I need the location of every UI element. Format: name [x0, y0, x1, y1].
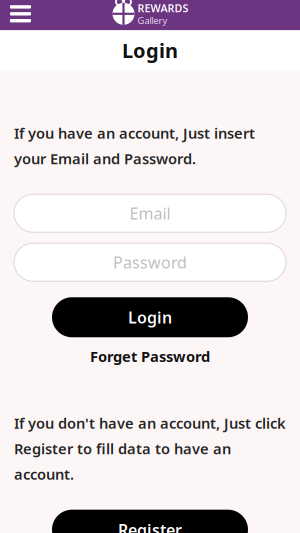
button[interactable]: Register	[52, 510, 248, 533]
staticText: If you don't have an account, Just click…	[14, 413, 286, 484]
staticText: If you have an account, Just insert your…	[14, 123, 255, 168]
button[interactable]: Forget Password	[52, 346, 248, 366]
staticText: Gallery	[137, 14, 167, 27]
button[interactable]: Menu	[0, 0, 41, 28]
button[interactable]: Login	[52, 297, 248, 337]
button[interactable]: Email	[14, 194, 286, 232]
staticText: Password	[113, 252, 187, 273]
staticText: Login	[128, 307, 172, 328]
staticText: REWARDS	[137, 1, 188, 15]
button[interactable]: Password	[14, 243, 286, 281]
staticText: Register	[118, 519, 182, 533]
staticText: Login	[122, 37, 178, 64]
staticText: Forget Password	[90, 346, 210, 366]
staticText: Email	[129, 203, 170, 224]
